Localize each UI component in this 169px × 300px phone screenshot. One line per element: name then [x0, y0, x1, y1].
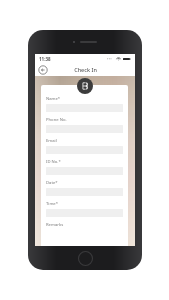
staticText: ID No.*	[46, 159, 61, 165]
staticText: Time*	[46, 201, 58, 207]
staticText: Remarks	[46, 222, 64, 228]
staticText: Name*	[46, 96, 61, 102]
staticText: Date*	[46, 180, 58, 186]
staticText: Phone No.	[46, 117, 67, 123]
staticText: 11:38	[39, 56, 51, 62]
button[interactable]: Logo	[77, 78, 93, 94]
staticText: Email	[46, 138, 57, 144]
button[interactable]: Back	[38, 65, 48, 75]
staticText: Check In	[74, 66, 97, 73]
